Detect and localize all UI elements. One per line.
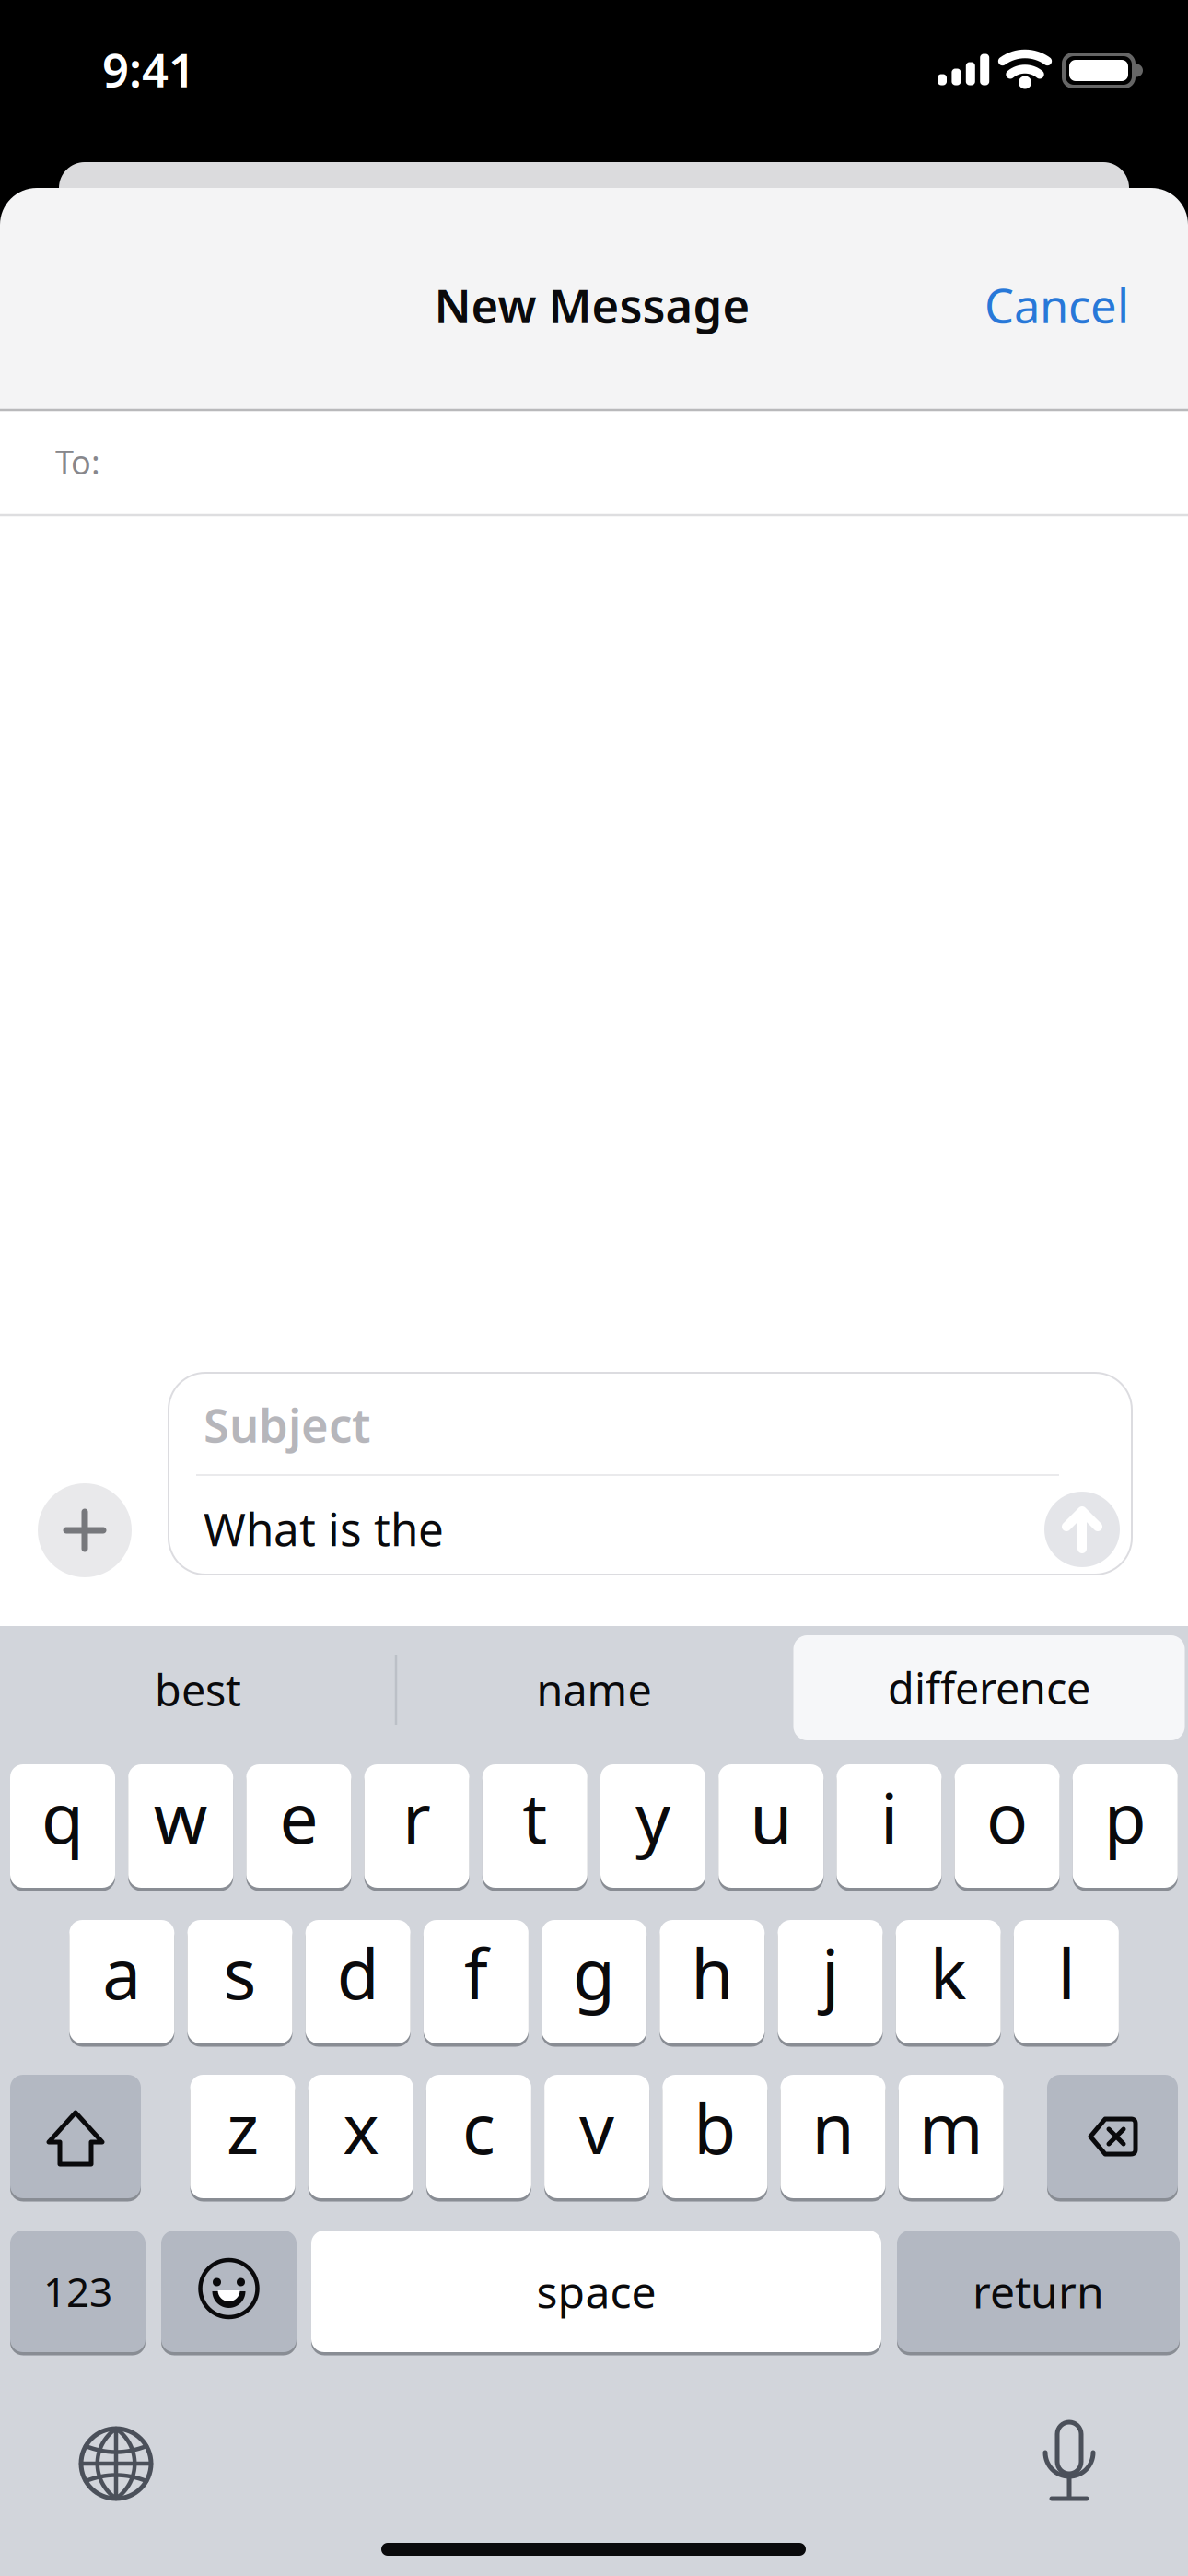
staticText: a [102,1927,141,2018]
button[interactable]: g [542,1920,647,2043]
staticText: best [155,1661,241,1718]
staticText: Cancel [984,274,1129,336]
staticText: g [573,1927,615,2018]
button[interactable]: e [246,1764,351,1888]
button[interactable]: 123 [10,2231,146,2352]
button[interactable]: l [1014,1920,1119,2043]
staticText: name [536,1661,652,1718]
staticText: Subject [204,1393,371,1455]
staticText: m [919,2082,983,2173]
staticText: c [462,2082,495,2173]
staticText: w [154,1771,208,1863]
button[interactable]: d [305,1920,410,2043]
button[interactable]: n [780,2075,885,2198]
staticText: r [403,1771,431,1863]
staticText: d [337,1927,379,2018]
staticText: j [821,1927,839,2018]
button[interactable] [10,2075,141,2198]
button[interactable]: o [955,1764,1060,1888]
staticText: k [930,1927,967,2018]
staticText: What is the [204,1498,444,1559]
button[interactable]: v [544,2075,649,2198]
button[interactable]: c [426,2075,531,2198]
staticText: n [812,2082,854,2173]
button[interactable]: return [897,2231,1180,2352]
staticText: y [635,1771,670,1863]
button[interactable] [161,2231,297,2352]
button[interactable]: y [600,1764,705,1888]
staticText: h [691,1927,733,2018]
button[interactable]: k [896,1920,1001,2043]
button[interactable]: b [662,2075,767,2198]
button[interactable]: w [128,1764,233,1888]
staticText: l [1058,1927,1075,2018]
button[interactable]: t [482,1764,587,1888]
button[interactable]: space [311,2231,881,2352]
staticText: x [343,2082,379,2173]
button[interactable] [70,2418,162,2510]
staticText: o [986,1771,1028,1863]
button[interactable]: a [69,1920,174,2043]
button[interactable]: To: [55,410,1188,513]
button[interactable] [1023,2407,1115,2509]
button[interactable]: name [401,1637,787,1742]
button[interactable]: q [10,1764,115,1888]
button[interactable]: u [719,1764,823,1888]
staticText: f [464,1927,488,2018]
button[interactable]: best [5,1637,391,1742]
staticText: return [973,2262,1104,2321]
button[interactable]: s [187,1920,292,2043]
button[interactable]: Cancel [761,254,1129,356]
button[interactable]: h [660,1920,765,2043]
staticText: q [41,1771,84,1863]
staticText: u [750,1771,792,1863]
button[interactable]: x [308,2075,413,2198]
button[interactable] [1047,2075,1178,2198]
button[interactable] [38,1483,132,1577]
staticText: b [694,2082,736,2173]
staticText: difference [888,1659,1090,1716]
staticText: v [579,2082,614,2173]
staticText: s [223,1927,256,2018]
staticText: i [880,1771,898,1863]
staticText: 9:41 [102,38,195,100]
staticText: To: [55,440,100,484]
staticText: z [227,2082,259,2173]
staticText: t [522,1771,547,1863]
staticText: e [279,1771,318,1863]
button[interactable]: j [778,1920,883,2043]
button[interactable]: difference [793,1635,1185,1740]
staticText: 123 [43,2264,112,2318]
button[interactable]: z [190,2075,295,2198]
button[interactable]: r [364,1764,469,1888]
button[interactable]: i [837,1764,942,1888]
staticText: p [1104,1771,1146,1863]
staticText: space [536,2262,656,2321]
button[interactable]: f [424,1920,529,2043]
button[interactable] [1044,1492,1120,1567]
button[interactable]: p [1073,1764,1178,1888]
button[interactable]: m [899,2075,1004,2198]
staticText: New Message [434,274,750,336]
